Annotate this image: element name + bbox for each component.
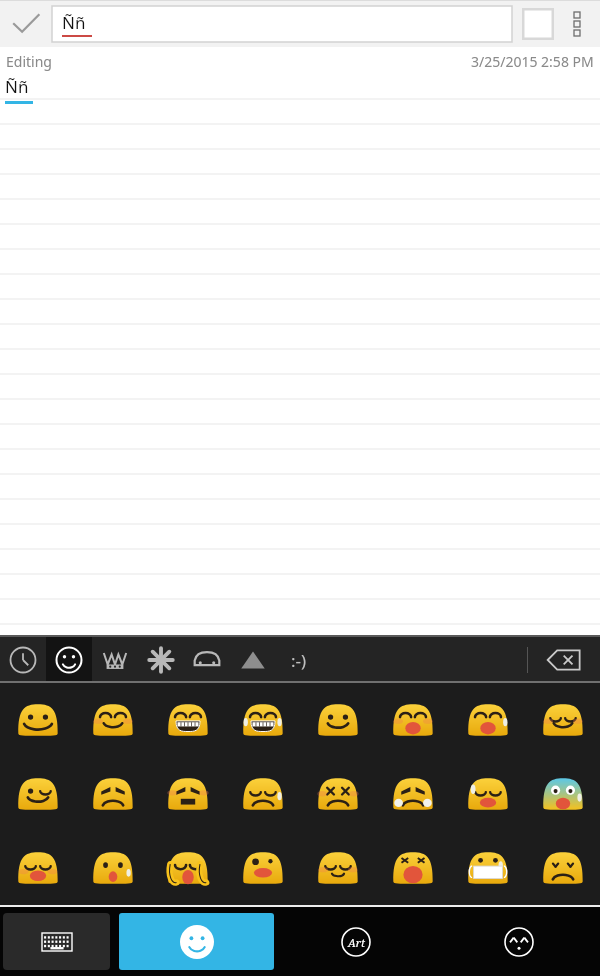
button[interactable]: Emoji category 6: [230, 637, 276, 683]
button[interactable]: Emoji 21: [300, 831, 375, 905]
button[interactable]: Emoji 7: [450, 683, 525, 757]
staticText: Ññ: [62, 11, 86, 34]
button[interactable]: Emoji 20: [225, 831, 300, 905]
button[interactable]: Emoji 23: [450, 831, 525, 905]
button[interactable]: Emoji category 2: [46, 637, 92, 683]
button[interactable]: Emoji category 4: [138, 637, 184, 683]
button[interactable]: Emoji 11: [150, 757, 225, 831]
button[interactable]: Emoji 2: [75, 683, 150, 757]
button[interactable]: Emoji category 3: [92, 637, 138, 683]
button[interactable]: Keyboard: [3, 913, 110, 970]
staticText: 3/25/2015 2:58 PM: [471, 52, 594, 71]
button[interactable]: Emoji 9: [0, 757, 75, 831]
button[interactable]: Emoji 6: [375, 683, 450, 757]
button[interactable]: Emoji 1: [0, 683, 75, 757]
button[interactable]: Done: [0, 1, 52, 47]
button[interactable]: Emoji 17: [0, 831, 75, 905]
button[interactable]: Emoji 8: [525, 683, 600, 757]
staticText: :-): [291, 649, 307, 672]
button[interactable]: Art: [274, 907, 437, 976]
button[interactable]: Backspace: [528, 637, 600, 683]
button[interactable]: Emoji category 5: [184, 637, 230, 683]
button[interactable]: Emoji 14: [375, 757, 450, 831]
button[interactable]: Emoji 19: [150, 831, 225, 905]
button[interactable]: Emoji 13: [300, 757, 375, 831]
button[interactable]: Emoji 16: [525, 757, 600, 831]
staticText: Editing: [6, 52, 52, 71]
button[interactable]: Emoji 18: [75, 831, 150, 905]
button[interactable]: More options: [554, 1, 600, 47]
button[interactable]: Note color: [522, 8, 554, 40]
button[interactable]: Kaomoji: [437, 907, 600, 976]
staticText: Ññ: [5, 75, 29, 98]
button[interactable]: Emoji 12: [225, 757, 300, 831]
button[interactable]: Ññ: [52, 6, 512, 42]
button[interactable]: Emoji: [119, 913, 274, 970]
button[interactable]: Ññ: [0, 75, 600, 635]
staticText: Art: [348, 935, 365, 950]
button[interactable]: Emoji 10: [75, 757, 150, 831]
button[interactable]: Emoji 4: [225, 683, 300, 757]
button[interactable]: :-): [276, 637, 322, 683]
button[interactable]: Emoji 5: [300, 683, 375, 757]
button[interactable]: Emoji 3: [150, 683, 225, 757]
button[interactable]: Emoji 15: [450, 757, 525, 831]
button[interactable]: Emoji category 1: [0, 637, 46, 683]
button[interactable]: Emoji 22: [375, 831, 450, 905]
button[interactable]: Emoji 24: [525, 831, 600, 905]
